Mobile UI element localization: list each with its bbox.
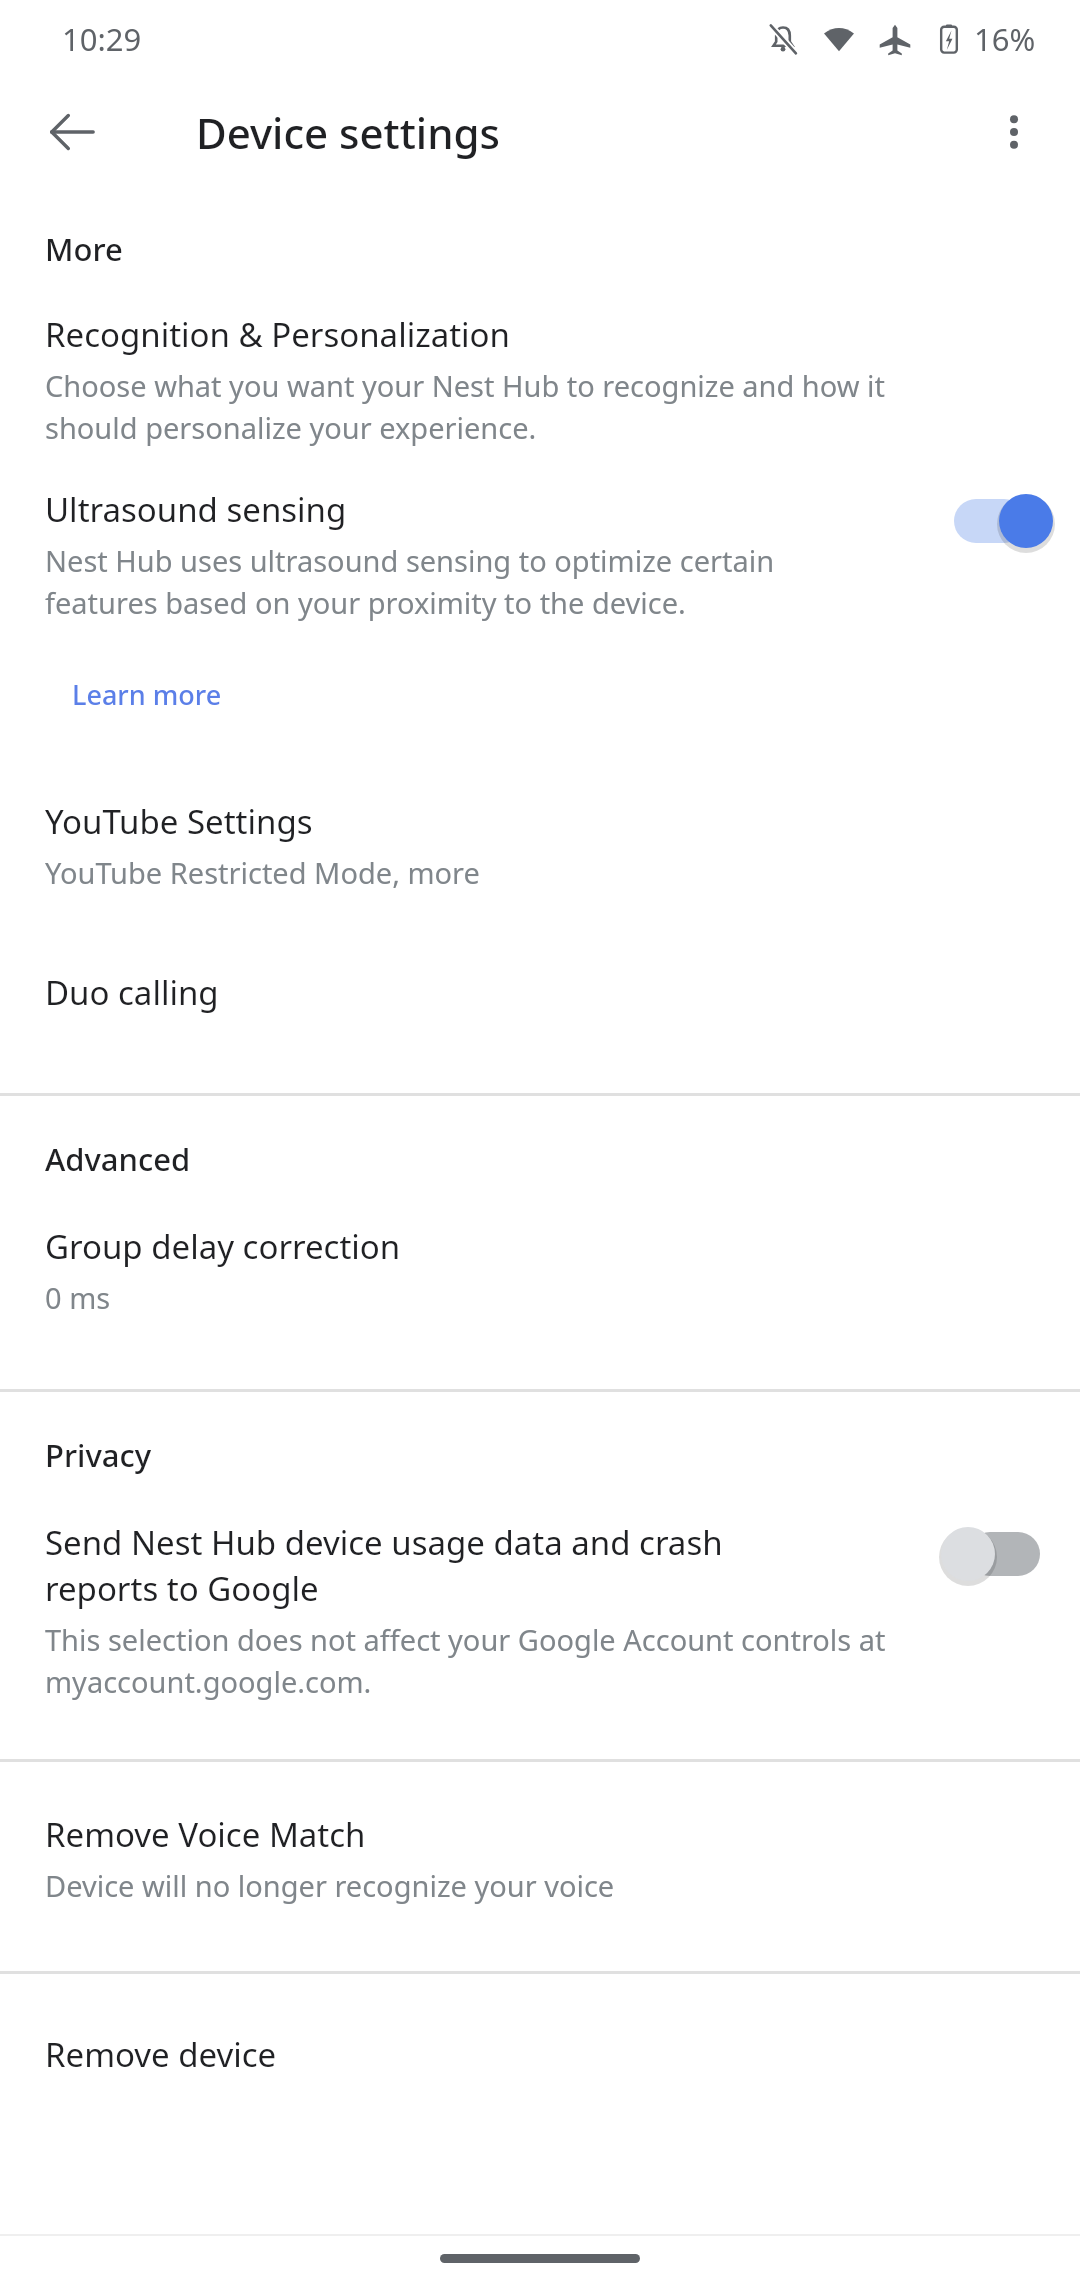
button[interactable]: More options — [972, 90, 1056, 174]
staticText: Recognition & Personalization — [45, 312, 510, 357]
button[interactable]: Ultrasound sensing — [0, 481, 1080, 628]
staticText: Nest Hub uses ultrasound sensing to opti… — [45, 541, 887, 622]
staticText: 10:29 — [62, 18, 142, 60]
button[interactable]: Group delay correction — [0, 1218, 1080, 1323]
staticText: More — [45, 228, 123, 270]
staticText: Remove device — [45, 2032, 277, 2077]
button[interactable]: Remove Voice Match — [0, 1806, 1080, 1911]
button[interactable]: Back — [30, 90, 114, 174]
staticText: Privacy — [45, 1434, 152, 1476]
staticText: Remove Voice Match — [45, 1812, 366, 1857]
staticText: YouTube Restricted Mode, more — [45, 853, 956, 892]
staticText: 0 ms — [45, 1278, 956, 1317]
button[interactable]: Remove device — [0, 2026, 1080, 2083]
staticText: YouTube Settings — [45, 799, 313, 844]
staticText: This selection does not affect your Goog… — [45, 1620, 887, 1701]
button[interactable]: Off — [950, 1524, 1050, 1584]
button[interactable]: Recognition & Personalization — [0, 306, 1080, 453]
button[interactable]: YouTube Settings — [0, 793, 1080, 898]
staticText: Advanced — [45, 1138, 191, 1180]
staticText: Device settings — [196, 104, 500, 161]
button[interactable]: Send Nest Hub device usage data and cras… — [0, 1514, 1080, 1707]
staticText: Send Nest Hub device usage data and cras… — [45, 1520, 787, 1611]
staticText: Device will no longer recognize your voi… — [45, 1866, 956, 1905]
staticText: Group delay correction — [45, 1224, 401, 1269]
button[interactable]: On — [950, 491, 1050, 551]
button[interactable]: Learn more — [0, 672, 1080, 717]
staticText: Learn more — [72, 676, 222, 713]
staticText: 16% — [974, 18, 1036, 60]
staticText: Duo calling — [45, 970, 219, 1015]
button[interactable]: Duo calling — [0, 964, 1080, 1021]
staticText: Choose what you want your Nest Hub to re… — [45, 366, 936, 447]
staticText: Ultrasound sensing — [45, 487, 751, 532]
